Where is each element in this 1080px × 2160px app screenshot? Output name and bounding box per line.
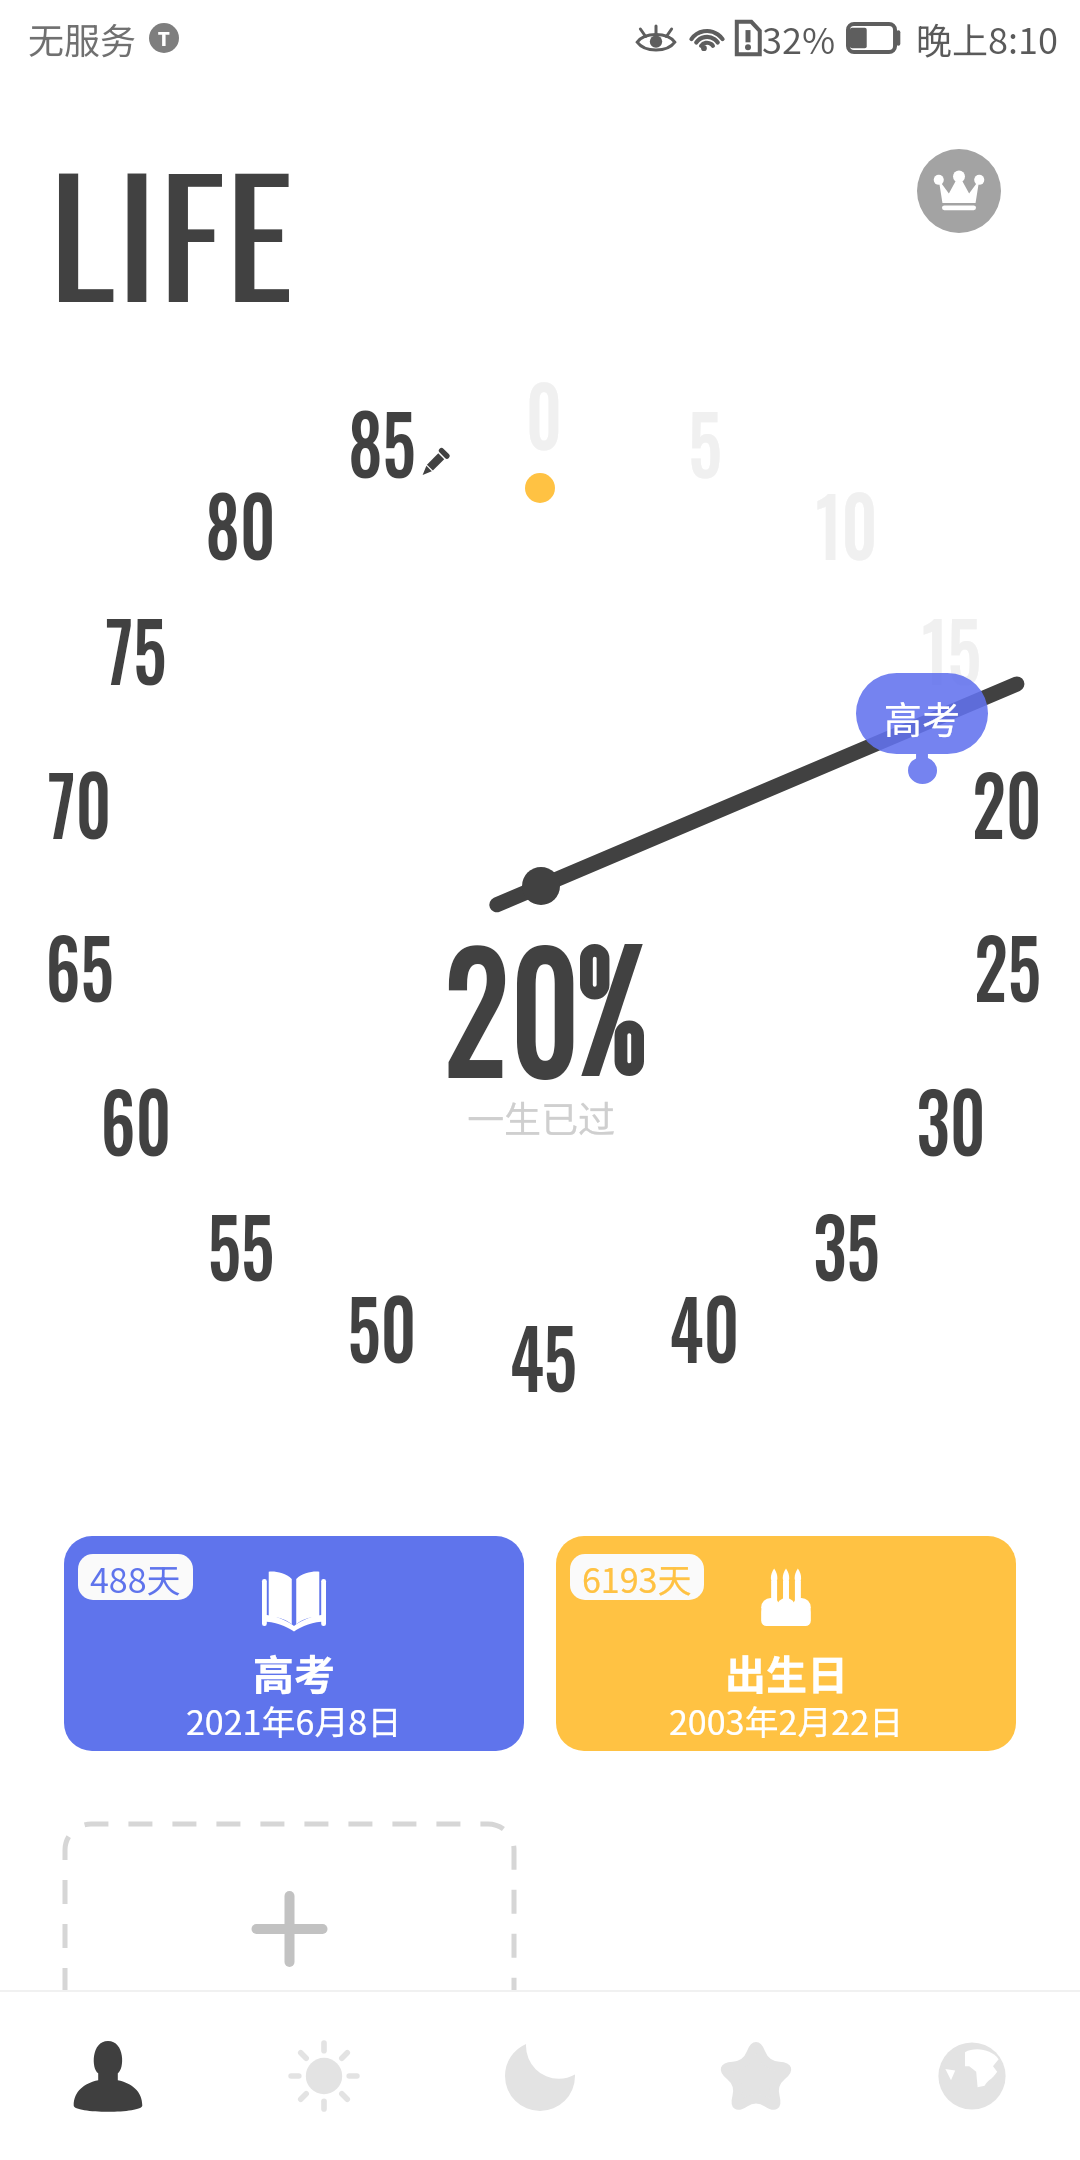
staticText: 32% [762,12,836,64]
button[interactable]: 6193天 [556,1536,1016,1751]
staticText: 30 [916,1059,986,1179]
staticText: 75 [105,588,167,708]
staticText: 5 [688,381,722,501]
button[interactable]: Premium [917,149,1001,233]
staticText: 无服务 [28,12,137,64]
staticText: 50 [347,1266,417,1386]
button[interactable]: Day [216,1992,432,2160]
button[interactable]: World [864,1992,1080,2160]
staticText: 55 [208,1184,274,1304]
staticText: 0 [526,353,562,473]
staticText: T [158,25,170,52]
staticText: 85 [348,381,416,501]
button[interactable]: 488天 [64,1536,524,1751]
staticText: 高考 [253,1642,335,1701]
staticText: 6193天 [582,1554,692,1600]
staticText: 15 [922,588,981,708]
staticText: 2021年6月8日 [186,1696,402,1745]
button[interactable]: 高考 [856,673,988,789]
staticText: 80 [205,463,276,583]
staticText: LIFE [48,112,294,348]
staticText: 488天 [90,1554,181,1600]
staticText: 70 [47,742,111,862]
staticText: 25 [974,905,1041,1025]
staticText: 2003年2月22日 [669,1696,904,1745]
button[interactable]: Edit lifespan [421,449,448,476]
staticText: 高考 [884,690,961,745]
staticText: 10 [815,463,878,583]
button[interactable]: Night [432,1992,648,2160]
staticText: 45 [510,1295,577,1415]
staticText: 一生已过 [467,1090,615,1144]
staticText: 晚上8:10 [916,12,1058,64]
staticText: 60 [100,1059,172,1179]
staticText: 65 [45,905,114,1025]
button[interactable]: Favorites [648,1992,864,2160]
staticText: 20 [443,886,581,1125]
button[interactable]: Profile [0,1992,216,2160]
staticText: 出生日 [725,1642,848,1701]
staticText: 20 [972,742,1042,862]
button[interactable]: Add event [62,1821,517,2021]
staticText: 35 [813,1184,880,1304]
staticText: 40 [669,1266,740,1386]
